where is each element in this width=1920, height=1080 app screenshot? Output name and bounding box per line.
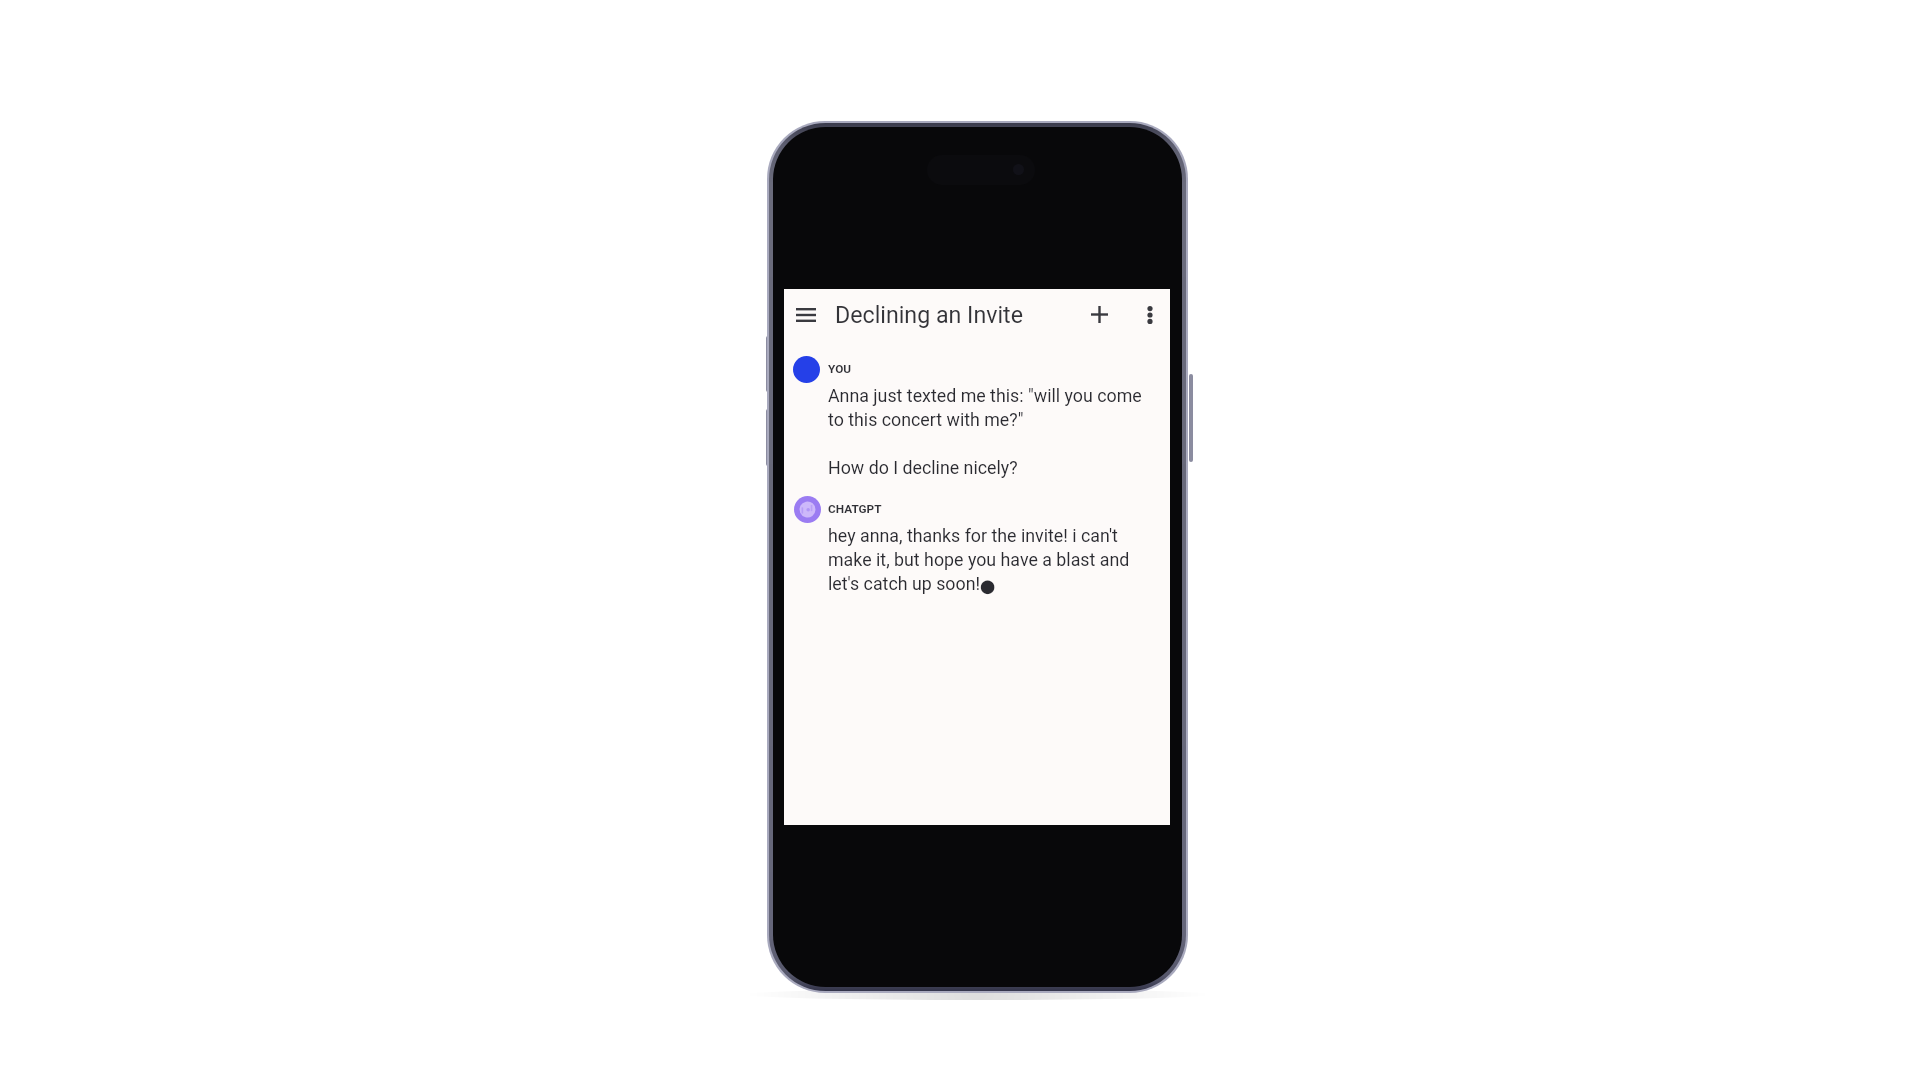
staticText: Anna just texted me this: "will you come… [828, 385, 1170, 478]
staticText: YOU [828, 362, 852, 376]
staticText: Declining an Invite [835, 301, 1023, 328]
button[interactable]: More options [1129, 289, 1170, 340]
staticText: CHATGPT [828, 502, 882, 516]
staticText: hey anna, thanks for the invite! i can't… [828, 525, 1170, 594]
button[interactable]: New chat [1079, 289, 1120, 340]
button[interactable]: Open navigation menu [786, 289, 826, 340]
